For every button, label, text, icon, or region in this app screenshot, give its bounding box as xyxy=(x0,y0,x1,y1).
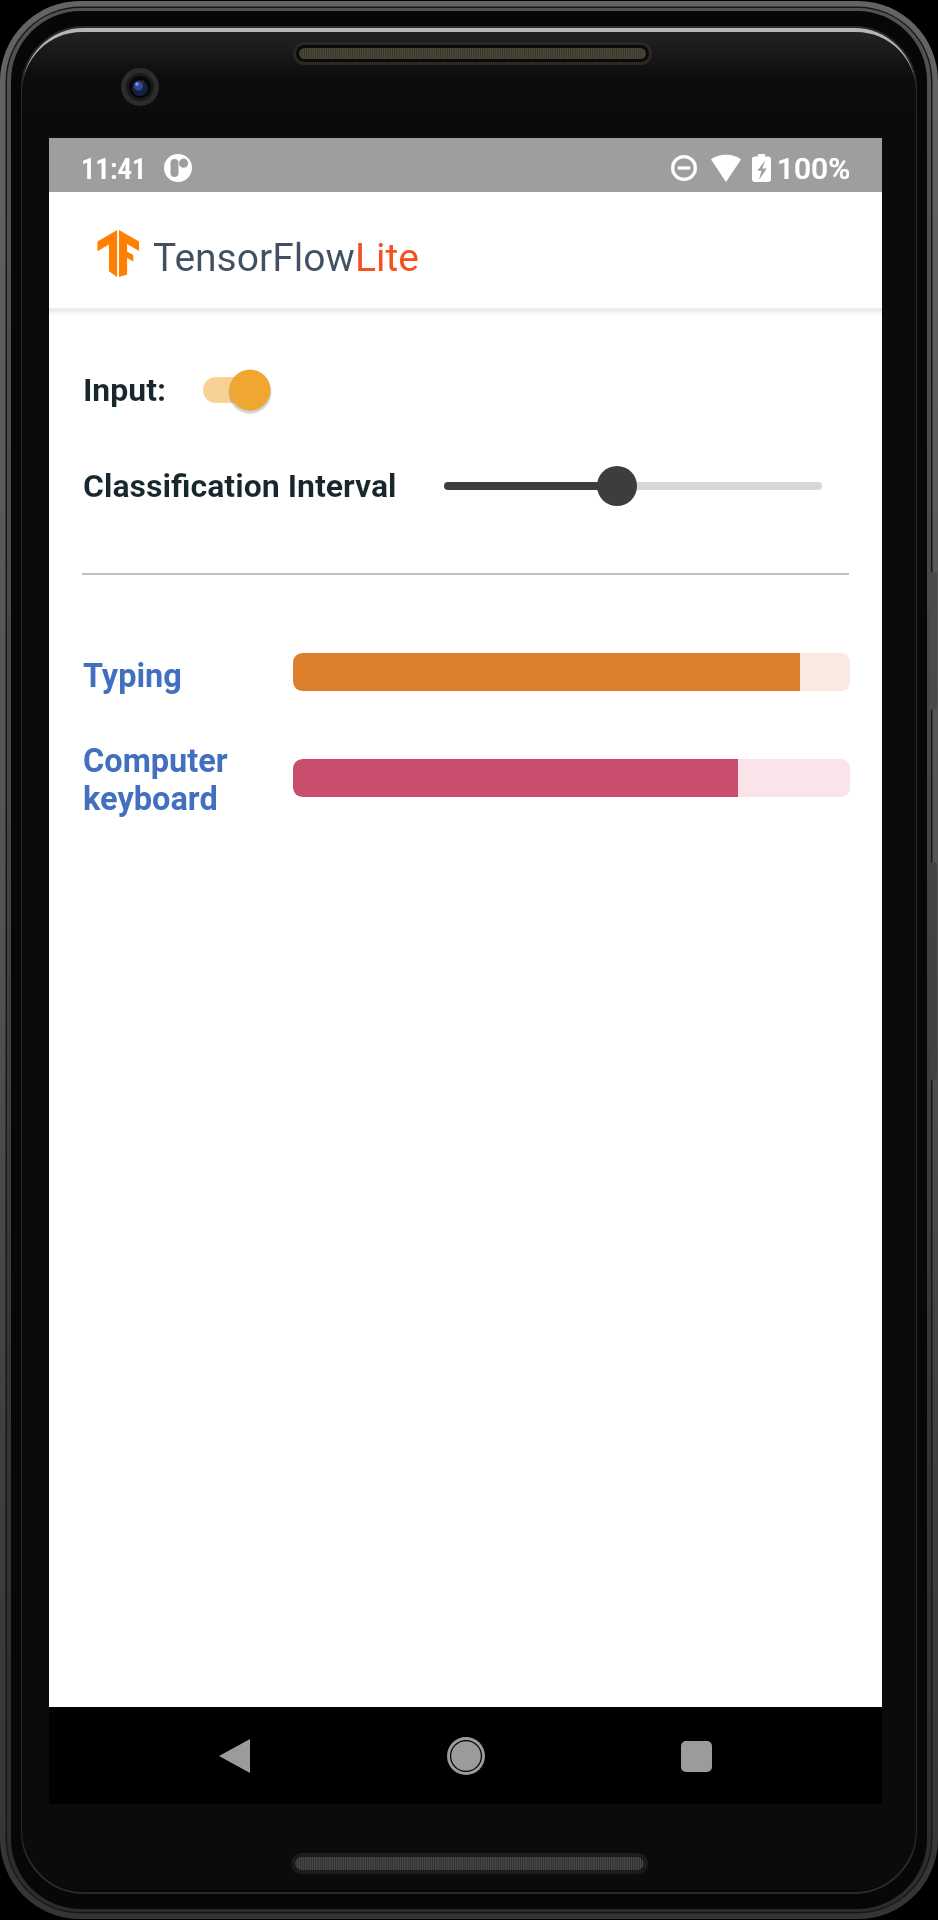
staticText: Classification Interval xyxy=(83,467,397,505)
staticText: Lite xyxy=(355,235,419,281)
staticText: 100% xyxy=(777,151,851,186)
button[interactable]: Computer keyboard xyxy=(82,734,850,830)
button[interactable]: Recent apps xyxy=(660,1720,732,1792)
button[interactable]: Home xyxy=(430,1720,502,1792)
button[interactable]: Input toggle xyxy=(203,363,303,417)
button[interactable]: Classification interval slider xyxy=(422,459,844,513)
staticText: Computer keyboard xyxy=(83,742,243,818)
staticText: TensorFlow xyxy=(153,235,355,281)
staticText: Typing xyxy=(83,657,243,695)
button[interactable]: Typing xyxy=(82,628,850,724)
button[interactable]: Back xyxy=(198,1720,270,1792)
staticText: 11:41 xyxy=(81,152,147,186)
staticText: Input: xyxy=(83,371,167,409)
